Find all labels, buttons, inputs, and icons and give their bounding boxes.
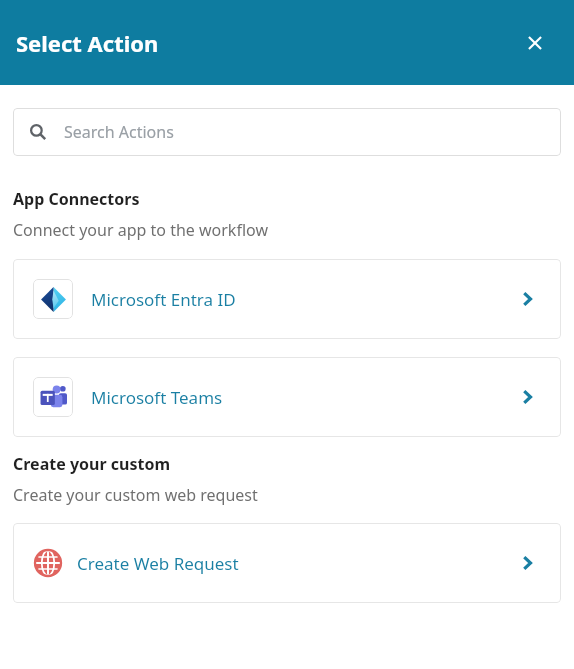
staticText: Search Actions <box>64 121 174 143</box>
staticText: Microsoft Entra ID <box>91 288 515 311</box>
staticText: Connect your app to the workflow <box>13 219 268 241</box>
button[interactable]: Close <box>518 26 552 60</box>
button[interactable]: Microsoft Teams <box>13 357 561 437</box>
staticText: Select Action <box>16 28 159 58</box>
other: Open <box>515 385 539 409</box>
staticText: Create your custom web request <box>13 484 258 506</box>
staticText: App Connectors <box>13 188 140 210</box>
button[interactable]: Microsoft Entra ID <box>13 259 561 339</box>
staticText: Create Web Request <box>77 552 515 575</box>
other: Open <box>515 551 539 575</box>
button[interactable]: Search Actions <box>13 108 561 156</box>
staticText: Microsoft Teams <box>91 386 515 409</box>
staticText: Create your custom <box>13 453 170 475</box>
other: Open <box>515 287 539 311</box>
button[interactable]: Create Web Request <box>13 523 561 603</box>
